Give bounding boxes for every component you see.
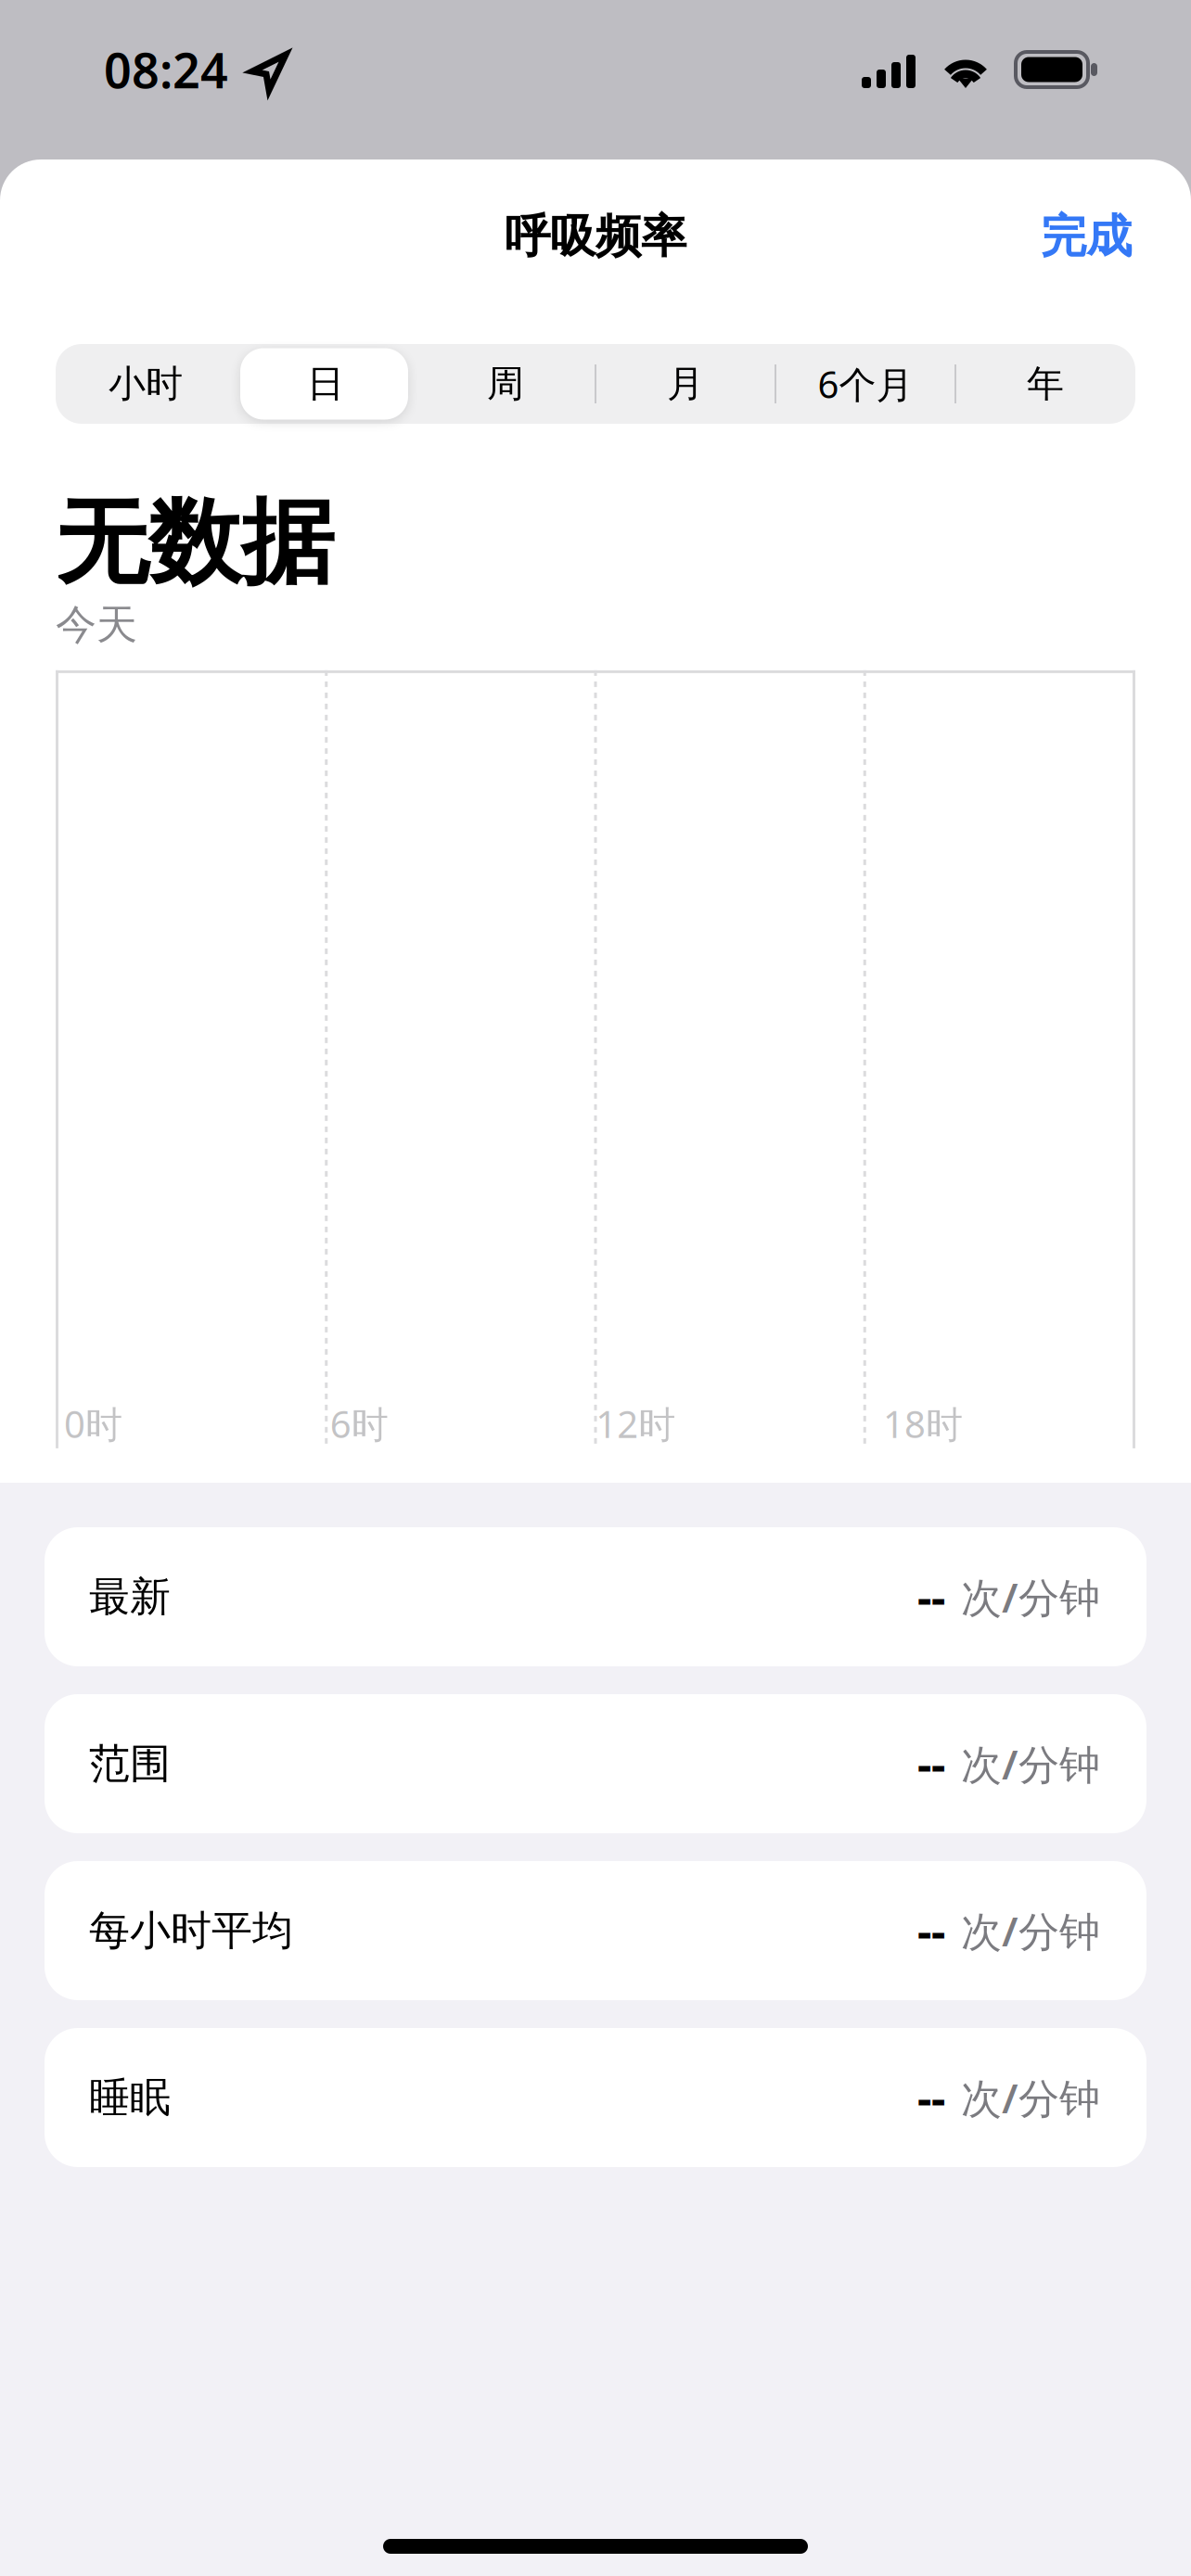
staticText: 呼吸频率 — [505, 208, 686, 265]
button[interactable]: 范围 — [45, 1694, 1146, 1833]
staticText: -- — [917, 1734, 945, 1793]
staticText: 12时 — [596, 1399, 676, 1448]
staticText: 6个月 — [818, 359, 913, 408]
staticText: 范围 — [89, 1739, 171, 1789]
staticText: 次/分钟 — [961, 1570, 1100, 1624]
button[interactable]: 年 — [955, 344, 1135, 424]
button[interactable]: 完成 — [985, 182, 1191, 291]
staticText: -- — [917, 2068, 945, 2127]
staticText: 次/分钟 — [961, 2070, 1100, 2125]
button[interactable]: 每小时平均 — [45, 1861, 1146, 2000]
staticText: 周 — [487, 361, 524, 407]
staticText: -- — [917, 1567, 945, 1626]
staticText: -- — [917, 1901, 945, 1960]
staticText: 次/分钟 — [961, 1737, 1100, 1791]
button[interactable]: 月 — [595, 344, 775, 424]
staticText: 今天 — [56, 600, 137, 650]
staticText: 最新 — [89, 1572, 171, 1622]
button[interactable]: 6个月 — [775, 344, 955, 424]
button[interactable]: 日 — [236, 344, 416, 424]
staticText: 完成 — [1041, 208, 1132, 265]
staticText: 08:24 — [104, 38, 228, 102]
staticText: 小时 — [109, 361, 183, 407]
staticText: 0时 — [64, 1399, 122, 1448]
button[interactable]: 睡眠 — [45, 2028, 1146, 2167]
staticText: 年 — [1027, 361, 1064, 407]
staticText: 日 — [307, 361, 344, 407]
staticText: 次/分钟 — [961, 1904, 1100, 1958]
button[interactable]: 最新 — [45, 1527, 1146, 1666]
staticText: 18时 — [883, 1399, 963, 1448]
staticText: 月 — [667, 361, 704, 407]
staticText: 睡眠 — [89, 2072, 171, 2123]
staticText: 每小时平均 — [89, 1906, 293, 1956]
staticText: 无数据 — [56, 486, 334, 600]
button[interactable]: 小时 — [56, 344, 236, 424]
button[interactable]: 周 — [416, 344, 595, 424]
staticText: 6时 — [330, 1399, 388, 1448]
